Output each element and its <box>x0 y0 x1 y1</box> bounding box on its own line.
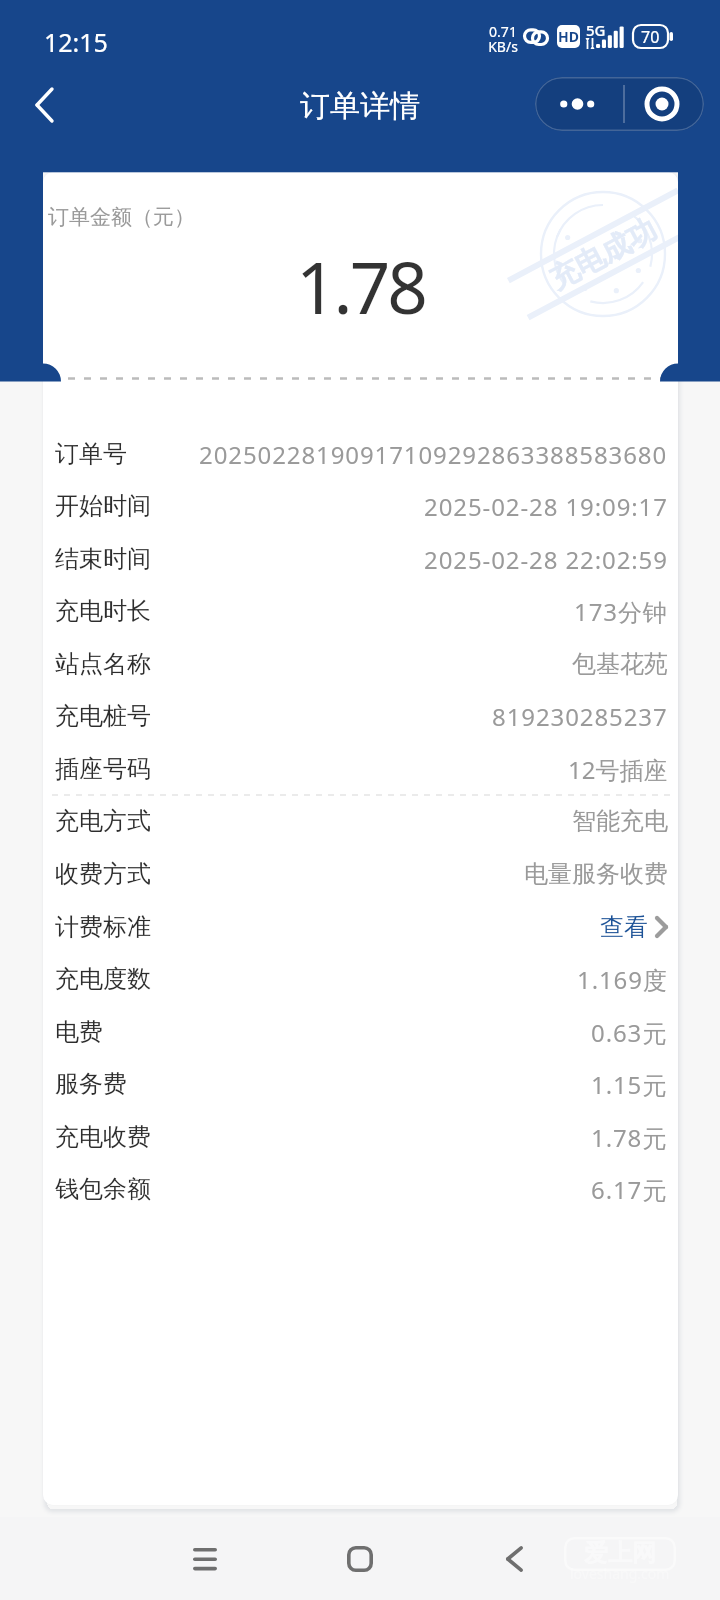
staticText: 充电度数 <box>55 964 151 994</box>
button[interactable]: 服务费 <box>55 1058 668 1110</box>
staticText: 查看 <box>600 912 648 942</box>
staticText: HD <box>558 27 579 46</box>
staticText: 0.63元 <box>591 1016 668 1049</box>
button[interactable]: 结束时间 <box>55 533 668 585</box>
button[interactable]: Back <box>486 1531 542 1587</box>
staticText: 充电收费 <box>55 1122 151 1152</box>
staticText: 819230285237 <box>492 700 668 733</box>
button[interactable]: 充电时长 <box>55 585 668 637</box>
staticText: 服务费 <box>55 1069 127 1099</box>
staticText: 12:15 <box>44 25 108 59</box>
button[interactable]: 充电桩号 <box>55 690 668 742</box>
staticText: 智能充电 <box>572 806 668 836</box>
staticText: 充电成功 <box>543 211 663 298</box>
staticText: 2025-02-28 19:09:17 <box>424 490 668 523</box>
button[interactable]: 收费方式 <box>55 848 668 900</box>
staticText: 1.15元 <box>591 1068 668 1101</box>
button[interactable]: 电费 <box>55 1006 668 1058</box>
staticText: 订单号 <box>55 439 127 469</box>
button[interactable]: 订单号 <box>55 428 668 480</box>
button[interactable]: Home <box>332 1531 388 1587</box>
button[interactable]: 开始时间 <box>55 480 668 532</box>
staticText: 20250228190917109292863388583680 <box>199 438 668 471</box>
button[interactable]: 站点名称 <box>55 638 668 690</box>
staticText: 0.71 KB/s <box>488 22 518 56</box>
button[interactable]: Back <box>12 73 76 137</box>
staticText: 收费方式 <box>55 859 151 889</box>
staticText: 钱包余额 <box>55 1174 151 1204</box>
staticText: 1.78 <box>296 238 425 335</box>
staticText: 5G <box>586 20 606 40</box>
staticText: 站点名称 <box>55 649 151 679</box>
staticText: 充电桩号 <box>55 701 151 731</box>
staticText: 结束时间 <box>55 544 151 574</box>
staticText: 包基花苑 <box>572 649 668 679</box>
staticText: 插座号码 <box>55 754 151 784</box>
staticText: 70 <box>641 26 660 48</box>
staticText: 计费标准 <box>55 912 151 942</box>
staticText: 订单详情 <box>300 87 420 125</box>
staticText: 12号插座 <box>568 753 668 786</box>
staticText: 6.17元 <box>591 1173 668 1206</box>
staticText: 订单金额（元） <box>48 204 195 230</box>
staticText: 开始时间 <box>55 491 151 521</box>
button[interactable]: 钱包余额 <box>55 1163 668 1215</box>
staticText: 电量服务收费 <box>524 859 668 889</box>
staticText: 1.169度 <box>577 963 668 996</box>
staticText: 1.78元 <box>591 1121 668 1154</box>
button[interactable]: 充电收费 <box>55 1111 668 1163</box>
staticText: 充电时长 <box>55 596 151 626</box>
button[interactable]: 充电方式 <box>55 795 668 847</box>
button[interactable]: 计费标准 <box>55 901 668 953</box>
staticText: 电费 <box>55 1017 103 1047</box>
button[interactable]: More options <box>535 77 704 131</box>
button[interactable]: 插座号码 <box>55 743 668 795</box>
staticText: 2025-02-28 22:02:59 <box>424 543 668 576</box>
staticText: 173分钟 <box>574 595 668 628</box>
staticText: 充电方式 <box>55 806 151 836</box>
button[interactable]: 充电度数 <box>55 953 668 1005</box>
button[interactable]: Recent apps <box>177 1531 233 1587</box>
